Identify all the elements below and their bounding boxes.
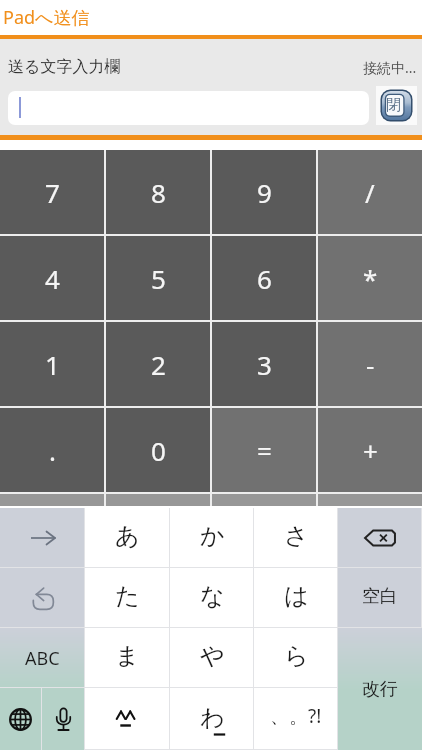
staticText: - — [366, 347, 375, 382]
staticText: = — [257, 433, 272, 468]
staticText: 6 — [257, 261, 272, 296]
staticText: 7 — [45, 175, 60, 210]
staticText: か — [200, 521, 225, 551]
staticText: た — [115, 581, 140, 611]
staticText: や — [200, 641, 225, 671]
staticText: な — [200, 581, 225, 611]
staticText: 空白 — [362, 585, 398, 608]
staticText: 5 — [151, 261, 166, 296]
button[interactable]: さ — [254, 508, 338, 568]
staticText: Padへ送信 — [3, 5, 90, 30]
button[interactable]: 閉じる — [376, 86, 417, 125]
button[interactable] — [8, 91, 369, 125]
button[interactable]: - — [318, 322, 422, 406]
button[interactable] — [0, 568, 85, 628]
button[interactable]: 音声入力 — [42, 688, 84, 750]
button[interactable]: 4 — [0, 236, 104, 320]
button[interactable]: は — [254, 568, 338, 628]
button[interactable]: / — [318, 150, 422, 234]
button[interactable]: = — [212, 408, 316, 492]
staticText: 改行 — [362, 678, 398, 701]
button[interactable]: * — [318, 236, 422, 320]
staticText: は — [284, 581, 309, 611]
staticText: さ — [284, 521, 309, 551]
button[interactable]: 空白 — [338, 568, 422, 628]
staticText: 閉 — [386, 96, 401, 115]
button[interactable]: ま — [85, 628, 170, 688]
staticText: 、。?! — [270, 703, 322, 729]
staticText: ら — [284, 641, 309, 671]
staticText: 接続中... — [363, 58, 417, 77]
button[interactable] — [338, 508, 422, 568]
staticText: あ — [115, 521, 140, 551]
staticText: 4 — [45, 261, 60, 296]
button[interactable]: 、。?! — [254, 688, 338, 750]
button[interactable]: ら — [254, 628, 338, 688]
staticText: わ — [200, 703, 225, 733]
button[interactable]: 2 — [106, 322, 210, 406]
staticText: . — [49, 433, 56, 468]
button[interactable]: + — [318, 408, 422, 492]
button[interactable]: 3 — [212, 322, 316, 406]
button[interactable]: 5 — [106, 236, 210, 320]
button[interactable]: 0 — [106, 408, 210, 492]
button[interactable]: ABC — [0, 628, 85, 688]
staticText: 1 — [45, 347, 60, 382]
button[interactable]: 8 — [106, 150, 210, 234]
staticText: / — [365, 175, 375, 210]
button[interactable]: 6 — [212, 236, 316, 320]
staticText: 送る文字入力欄 — [8, 57, 121, 77]
staticText: + — [363, 433, 378, 468]
staticText: 8 — [151, 175, 166, 210]
staticText: ま — [115, 641, 140, 671]
button[interactable]: 1 — [0, 322, 104, 406]
button[interactable]: か — [170, 508, 254, 568]
staticText: 0 — [151, 433, 166, 468]
button[interactable]: あ — [85, 508, 170, 568]
staticText: ABC — [25, 646, 60, 671]
staticText: 2 — [151, 347, 166, 382]
button[interactable]: . — [0, 408, 104, 492]
staticText: 9 — [257, 175, 272, 210]
staticText: 3 — [257, 347, 272, 382]
button[interactable] — [85, 688, 170, 750]
button[interactable]: 言語を切り替え — [0, 688, 41, 750]
button[interactable] — [0, 508, 85, 568]
button[interactable]: や — [170, 628, 254, 688]
button[interactable]: 9 — [212, 150, 316, 234]
button[interactable]: た — [85, 568, 170, 628]
button[interactable]: な — [170, 568, 254, 628]
button[interactable]: 7 — [0, 150, 104, 234]
button[interactable]: わ — [170, 688, 254, 750]
staticText: * — [363, 261, 378, 296]
button[interactable]: 改行 — [338, 628, 422, 750]
